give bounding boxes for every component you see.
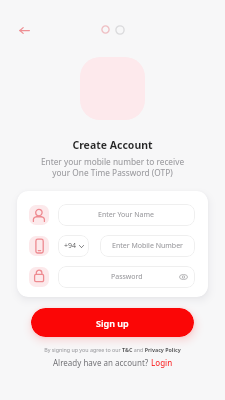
button[interactable]: Password — [58, 266, 195, 288]
staticText: Enter your mobile number to receive your… — [0, 156, 225, 178]
staticText: Create Account — [0, 138, 225, 152]
staticText: Password — [111, 272, 143, 282]
button[interactable]: Enter Mobile Number — [100, 235, 195, 257]
button[interactable]: Show password — [177, 271, 189, 283]
staticText: Enter Mobile Number — [112, 241, 184, 251]
staticText: Already have an account? — [53, 357, 151, 368]
staticText: +94 — [64, 241, 77, 251]
button[interactable]: Enter Your Name — [58, 204, 195, 226]
staticText: Login — [151, 357, 173, 368]
button[interactable]: +94 — [58, 235, 89, 257]
button[interactable]: Sign up — [31, 308, 194, 337]
staticText: Sign up — [96, 317, 129, 329]
button[interactable]: Back — [12, 18, 36, 42]
button[interactable]: Login — [151, 357, 173, 368]
staticText: By signing up you agree to our T&C and P… — [0, 346, 225, 353]
staticText: Enter Your Name — [98, 210, 155, 220]
